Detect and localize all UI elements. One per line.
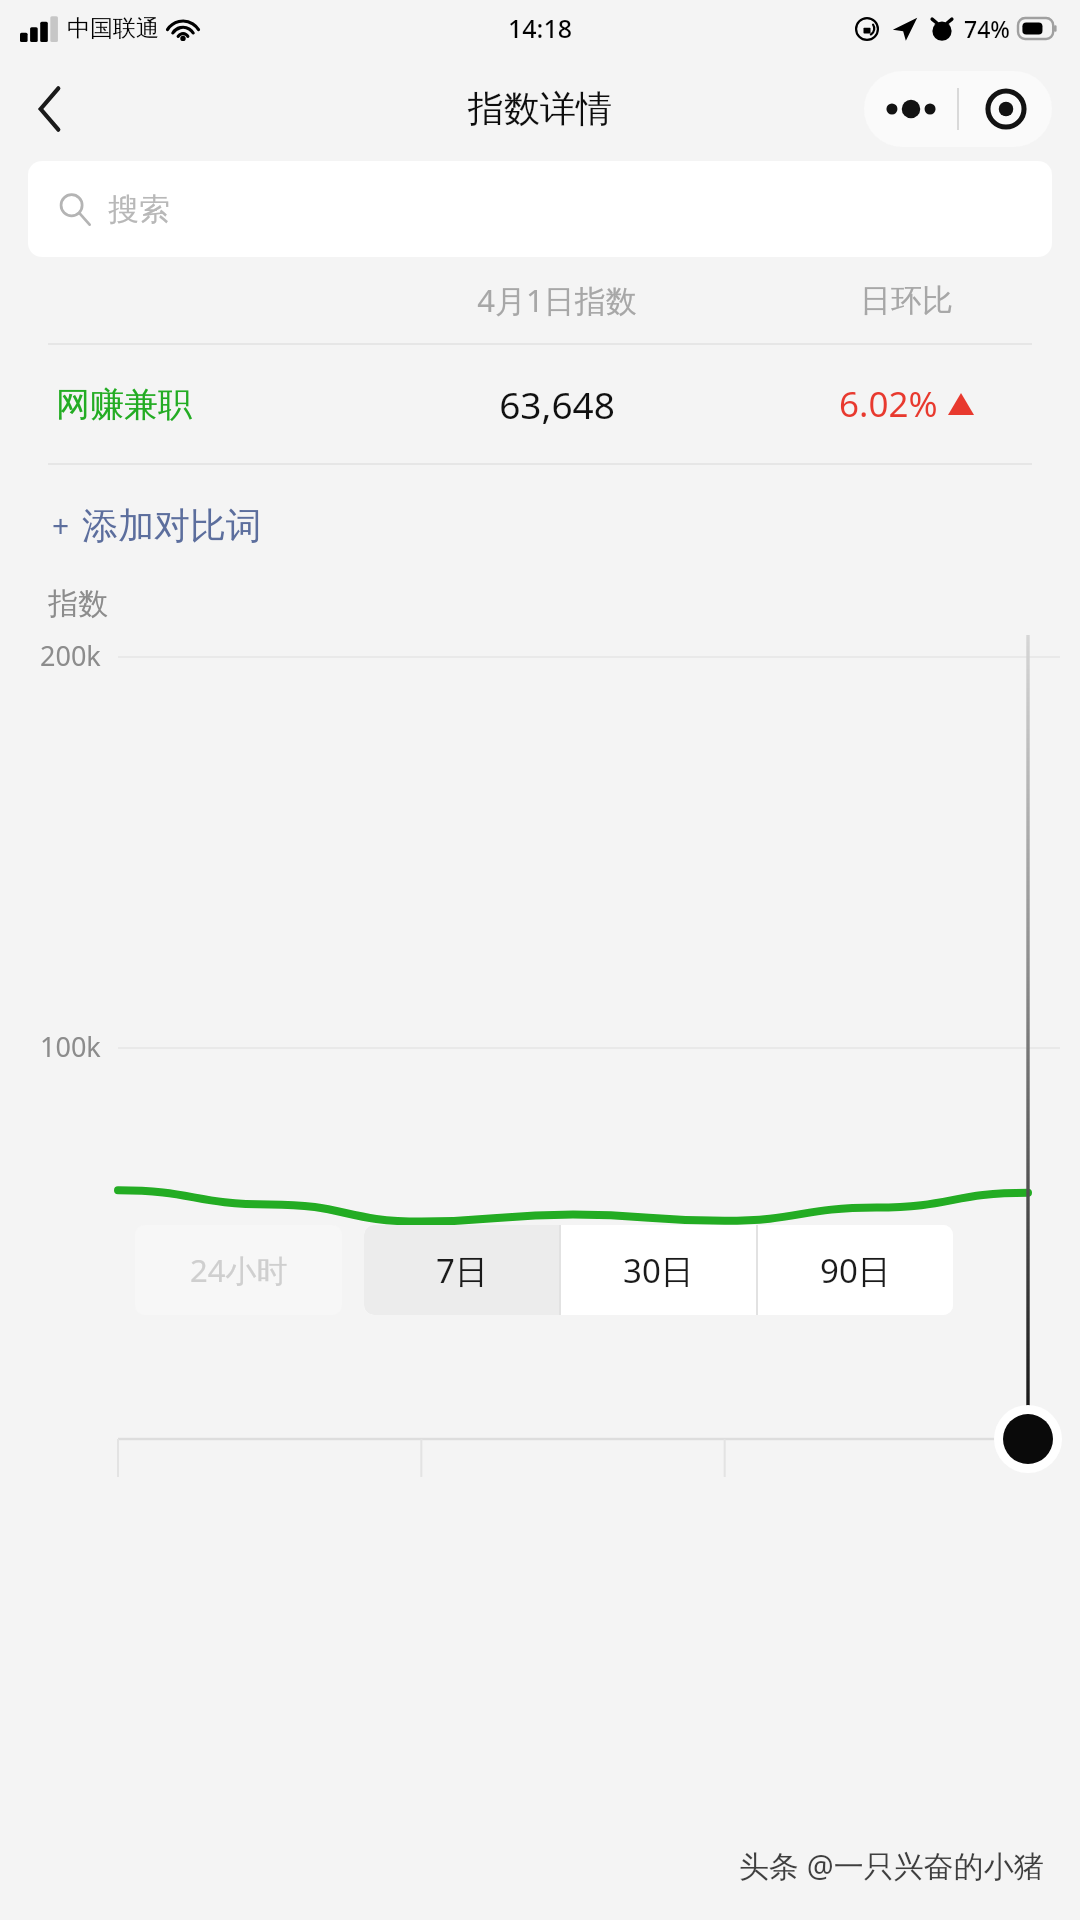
staticText: 6.02% — [839, 380, 938, 428]
button[interactable]: 30日 — [561, 1225, 756, 1315]
button[interactable]: + — [0, 465, 1080, 585]
staticText: 90日 — [820, 1248, 891, 1293]
button[interactable]: 搜索 — [28, 161, 1052, 257]
staticText: 7日 — [436, 1248, 488, 1293]
staticText: 30日 — [623, 1248, 694, 1293]
button[interactable]: Close — [959, 71, 1052, 147]
staticText: 网赚兼职 — [56, 383, 192, 426]
button[interactable]: Back — [14, 73, 86, 145]
button[interactable]: 7日 — [364, 1225, 559, 1315]
staticText: 头条 @一只兴奋的小猪 — [739, 1845, 1044, 1886]
staticText: 搜索 — [108, 190, 170, 229]
staticText: 14:18 — [508, 11, 573, 45]
staticText: 指数 — [48, 585, 108, 623]
button[interactable]: 网赚兼职 — [0, 345, 1080, 463]
staticText: 添加对比词 — [82, 503, 262, 548]
staticText: 200k — [40, 637, 101, 674]
button[interactable]: 90日 — [758, 1225, 953, 1315]
staticText: 指数详情 — [468, 86, 612, 131]
staticText: 日环比 — [749, 281, 1064, 320]
staticText: 24小时 — [190, 1249, 288, 1291]
staticText: 4月1日指数 — [365, 279, 749, 321]
staticText: + — [52, 505, 70, 546]
staticText: 74% — [964, 13, 1010, 44]
button[interactable]: 24小时 — [135, 1225, 342, 1315]
staticText: 100k — [40, 1028, 101, 1065]
button[interactable]: More options — [864, 71, 957, 147]
staticText: 中国联通 — [67, 14, 159, 43]
staticText: 63,648 — [365, 379, 749, 429]
